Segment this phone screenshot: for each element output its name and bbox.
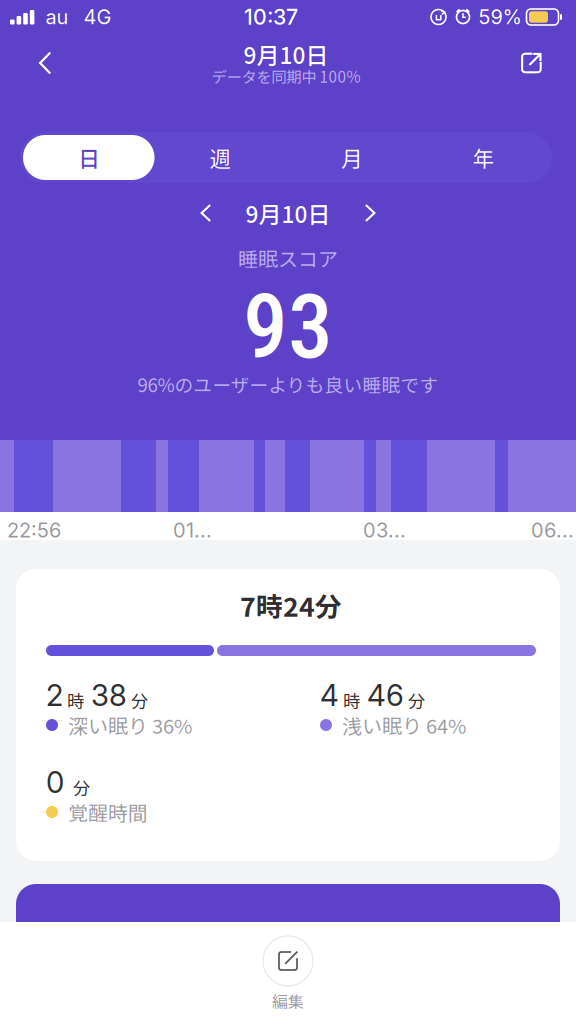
- staticText: 46: [367, 677, 404, 713]
- staticText: 06...: [531, 518, 574, 542]
- staticText: 月: [341, 142, 362, 173]
- staticText: 38: [91, 677, 127, 713]
- staticText: 時: [67, 688, 84, 713]
- button[interactable]: Next day: [352, 196, 388, 230]
- staticText: 覚醒時間: [68, 797, 148, 826]
- staticText: 編集: [272, 989, 304, 1013]
- staticText: 93: [243, 275, 333, 379]
- button[interactable]: 年: [417, 135, 549, 180]
- staticText: 9月10日: [244, 38, 329, 70]
- staticText: 分: [408, 688, 425, 713]
- button[interactable]: 週: [154, 135, 286, 180]
- button[interactable]: Previous day: [187, 196, 223, 230]
- button[interactable]: 日: [23, 135, 154, 180]
- staticText: 分: [73, 775, 90, 800]
- staticText: 0: [46, 764, 64, 800]
- staticText: 10:37: [244, 4, 298, 30]
- staticText: 96%のユーザーよりも良い睡眠です: [137, 370, 438, 397]
- staticText: au: [45, 5, 68, 29]
- button[interactable]: Share: [501, 34, 576, 92]
- staticText: 03...: [363, 518, 406, 542]
- staticText: 時: [343, 688, 360, 713]
- staticText: 4: [320, 677, 339, 713]
- staticText: 01...: [173, 518, 212, 542]
- staticText: 日: [78, 142, 99, 173]
- staticText: 浅い眠り 64%: [342, 710, 466, 739]
- staticText: 7時24分: [240, 586, 342, 624]
- staticText: データを同期中 100%: [212, 65, 361, 87]
- staticText: 2: [46, 677, 63, 713]
- staticText: 59%: [478, 5, 521, 29]
- staticText: 睡眠スコア: [238, 243, 338, 272]
- button[interactable]: Back: [0, 34, 71, 92]
- staticText: 分: [131, 688, 148, 713]
- staticText: 22:56: [7, 518, 61, 542]
- button[interactable]: 月: [286, 135, 417, 180]
- staticText: 4G: [83, 5, 111, 29]
- button[interactable]: 編集: [0, 922, 576, 1024]
- staticText: 週: [210, 142, 231, 173]
- staticText: 9月10日: [245, 197, 330, 229]
- staticText: 深い眠り 36%: [68, 710, 192, 739]
- staticText: 年: [473, 142, 494, 173]
